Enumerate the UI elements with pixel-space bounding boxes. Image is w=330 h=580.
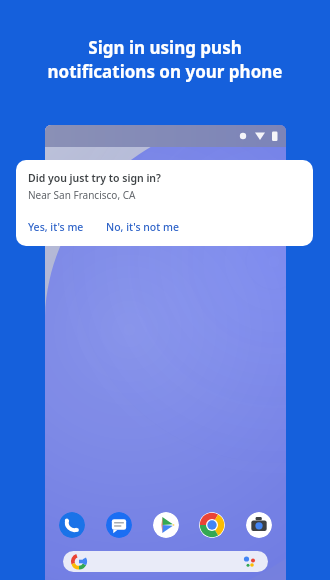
staticText: Yes, it's me [28,220,84,234]
button[interactable]: Camera [246,512,272,538]
button[interactable]: Search [63,551,268,572]
button[interactable]: Yes, it's me [28,220,84,234]
button[interactable]: Phone [59,512,85,538]
button[interactable]: Play Store [153,512,179,538]
button[interactable]: Messages [106,512,132,538]
button[interactable]: Did you just try to sign in? [16,160,313,246]
staticText: Sign in using push notifications on your… [14,36,316,83]
button[interactable]: Chrome [199,512,225,538]
staticText: Near San Francisco, CA [28,188,136,202]
button[interactable]: No, it's not me [106,220,179,234]
staticText: No, it's not me [106,220,179,234]
staticText: Did you just try to sign in? [28,171,161,185]
